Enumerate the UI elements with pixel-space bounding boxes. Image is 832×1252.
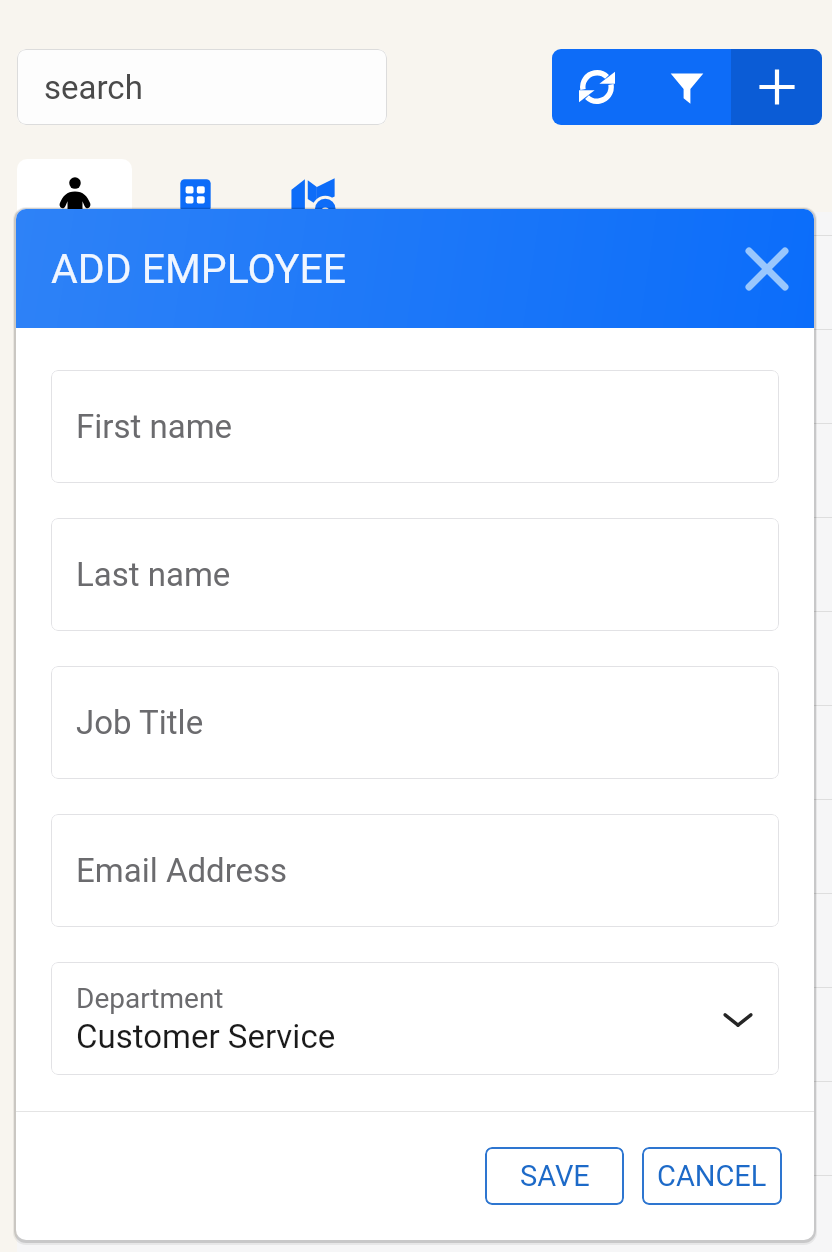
staticText: Customer Service [76,1017,336,1056]
button[interactable]: Add [731,49,822,125]
button[interactable]: Close [738,240,796,298]
staticText: search [44,68,143,107]
button[interactable]: SAVE [485,1147,624,1205]
staticText: CANCEL [657,1159,767,1193]
staticText: Email Address [76,851,288,890]
button[interactable]: Companies [177,177,213,213]
button[interactable]: Email Address [51,814,779,927]
staticText: SAVE [520,1159,590,1193]
button[interactable]: search [17,49,387,125]
staticText: Job Title [76,703,204,742]
staticText: First name [76,407,233,446]
button[interactable]: Department [51,962,779,1075]
staticText: Department [76,982,224,1015]
button[interactable]: First name [51,370,779,483]
staticText: ADD EMPLOYEE [51,245,347,293]
button[interactable]: Last name [51,518,779,631]
button[interactable]: People [17,159,132,231]
button[interactable]: Refresh [552,49,642,125]
button[interactable]: CANCEL [642,1147,782,1205]
button[interactable]: Filter [642,49,731,125]
staticText: Last name [76,555,231,594]
button[interactable]: Job Title [51,666,779,779]
button[interactable]: Map [290,174,338,222]
